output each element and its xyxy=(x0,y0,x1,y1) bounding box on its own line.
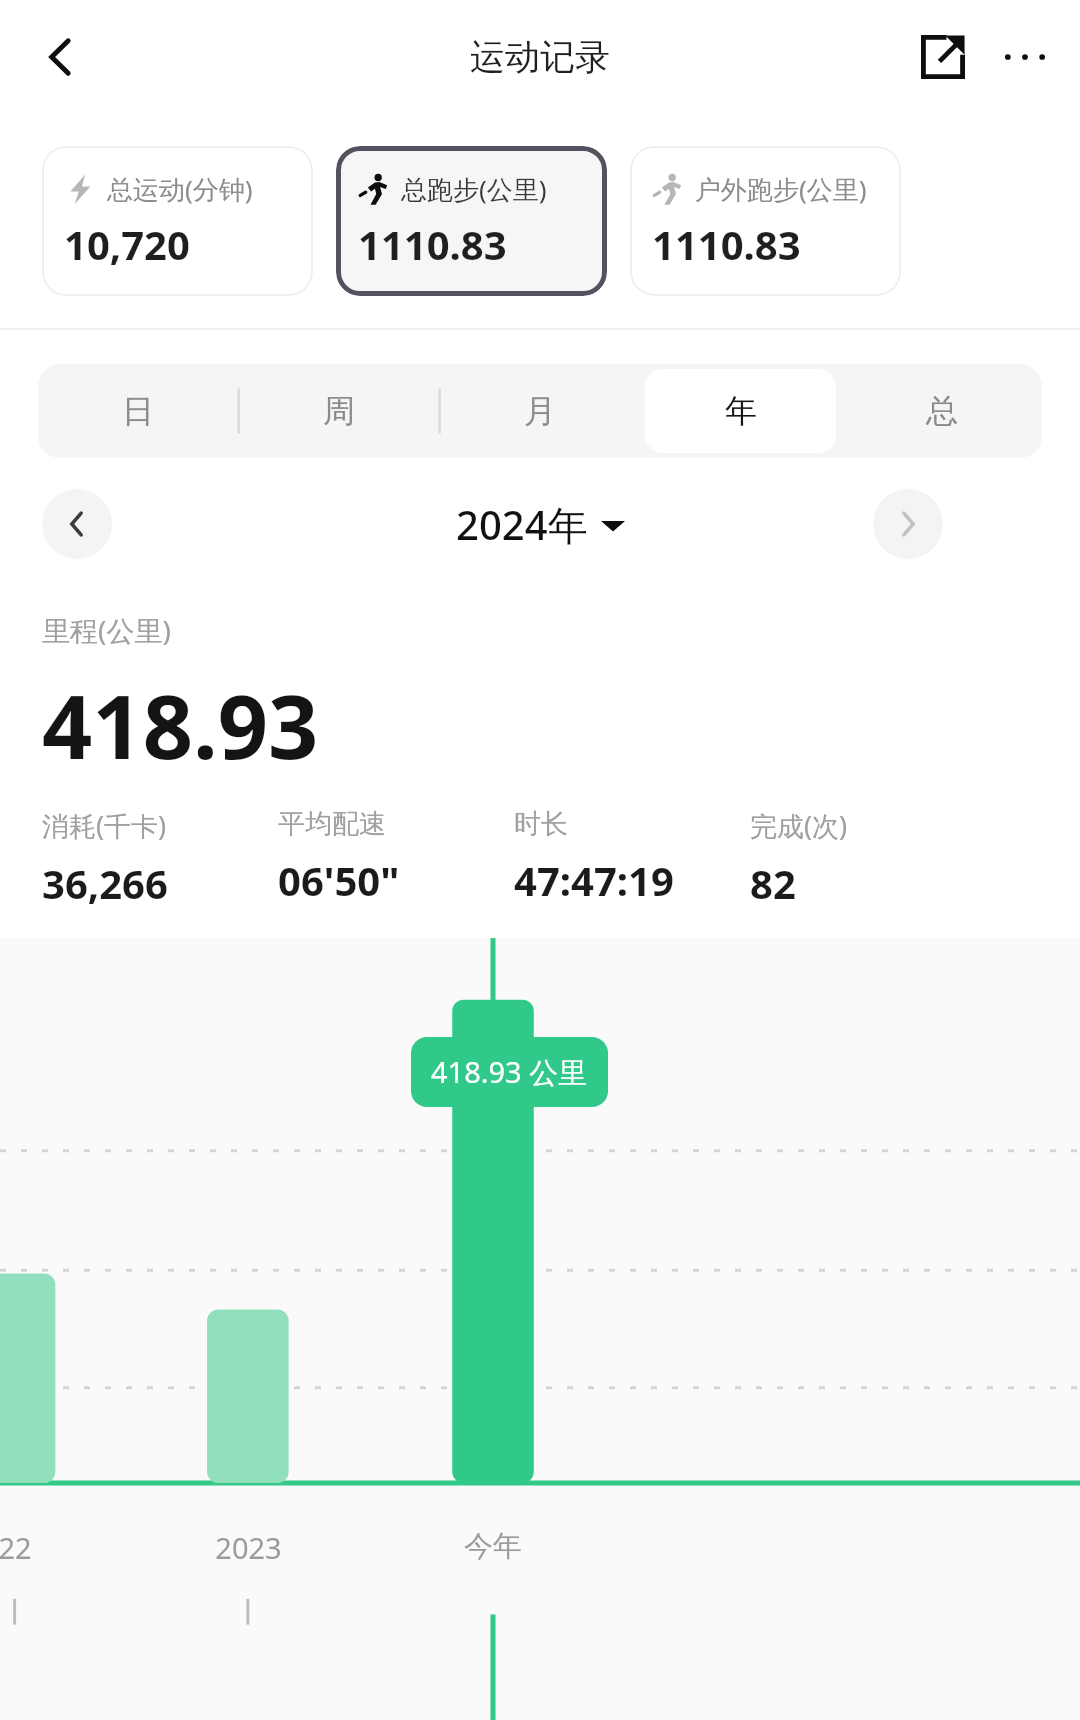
staticText: 里程(公里) xyxy=(42,611,171,649)
staticText: 月 xyxy=(524,391,556,431)
staticText: 运动记录 xyxy=(470,35,610,79)
staticText: 418.93 xyxy=(42,665,319,785)
button[interactable]: 日 xyxy=(43,369,233,453)
staticText: 2024年 xyxy=(456,497,588,552)
staticText: 日 xyxy=(122,391,154,431)
staticText: 总运动(分钟) xyxy=(107,171,253,207)
staticText: 1110.83 xyxy=(358,217,507,271)
staticText: 时长 xyxy=(514,807,568,841)
button[interactable]: 年 xyxy=(645,369,836,453)
button[interactable]: Share xyxy=(902,16,984,98)
button[interactable]: 总运动(分钟) xyxy=(42,146,313,296)
button[interactable]: 户外跑步(公里) xyxy=(630,146,901,296)
staticText: 年 xyxy=(725,391,757,431)
button[interactable]: 月 xyxy=(444,369,635,453)
staticText: 82 xyxy=(750,856,796,910)
staticText: 47:47:19 xyxy=(514,853,674,907)
button[interactable]: 周 xyxy=(243,369,434,453)
staticText: 1110.83 xyxy=(652,217,801,271)
button[interactable]: Back xyxy=(18,14,104,100)
staticText: 总跑步(公里) xyxy=(401,171,547,207)
staticText: 10,720 xyxy=(64,217,190,271)
button[interactable]: 总 xyxy=(846,369,1037,453)
button[interactable]: 418.93 公里 xyxy=(411,1037,608,1107)
staticText: 今年 xyxy=(464,1528,522,1565)
staticText: 36,266 xyxy=(42,856,168,910)
staticText: 平均配速 xyxy=(278,807,386,841)
button[interactable]: 总跑步(公里) xyxy=(336,146,607,296)
button[interactable]: Previous year xyxy=(42,489,112,559)
staticText: 完成(次) xyxy=(750,807,848,844)
staticText: 周 xyxy=(323,391,355,431)
staticText: 418.93 公里 xyxy=(431,1052,588,1092)
button[interactable]: Next year xyxy=(873,489,943,559)
staticText: 22 xyxy=(0,1528,32,1567)
staticText: 消耗(千卡) xyxy=(42,807,167,844)
staticText: 06'50" xyxy=(278,853,400,907)
staticText: 2023 xyxy=(215,1528,282,1567)
button[interactable]: 2024年 xyxy=(456,497,625,552)
button[interactable]: More options xyxy=(984,16,1066,98)
staticText: 户外跑步(公里) xyxy=(695,171,867,207)
staticText: 总 xyxy=(926,391,958,431)
